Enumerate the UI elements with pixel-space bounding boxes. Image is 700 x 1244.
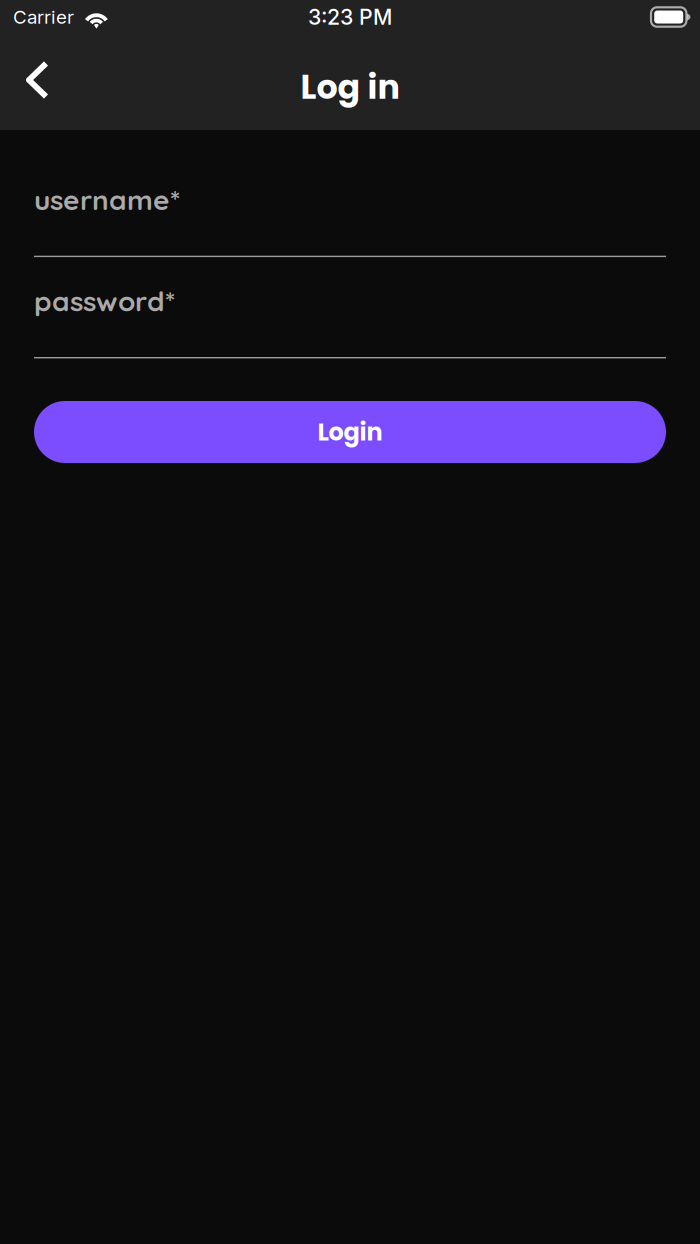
staticText: Log in bbox=[300, 64, 399, 110]
staticText: Login bbox=[317, 415, 382, 449]
staticText: Carrier bbox=[13, 6, 74, 28]
staticText: password* bbox=[34, 283, 175, 318]
staticText: 3:23 PM bbox=[308, 4, 392, 30]
button[interactable]: Back bbox=[0, 34, 71, 130]
button[interactable]: Login bbox=[34, 401, 666, 463]
staticText: username* bbox=[34, 182, 180, 217]
